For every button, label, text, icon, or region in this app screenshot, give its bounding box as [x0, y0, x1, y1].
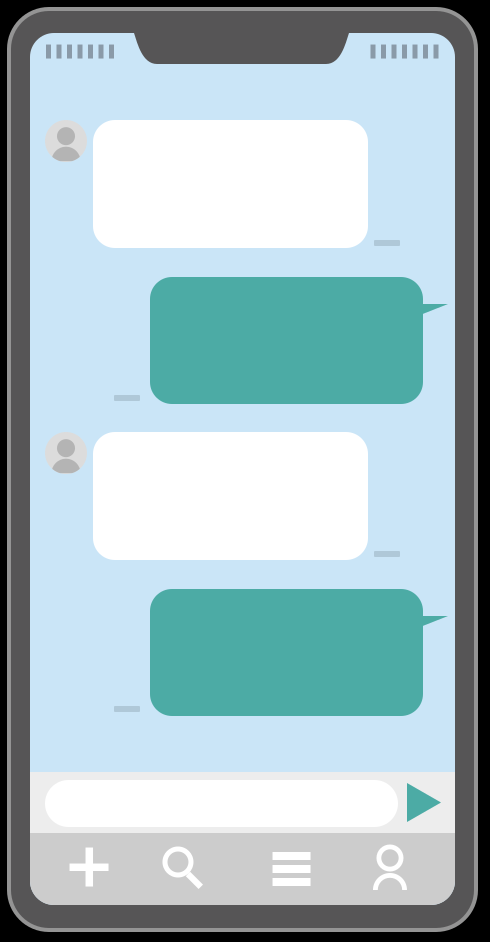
button[interactable]: Search: [136, 833, 242, 905]
button[interactable]: Profile: [349, 833, 455, 905]
button[interactable]: Send: [407, 783, 441, 822]
button[interactable]: New: [30, 833, 136, 905]
button[interactable]: Menu: [242, 833, 349, 905]
